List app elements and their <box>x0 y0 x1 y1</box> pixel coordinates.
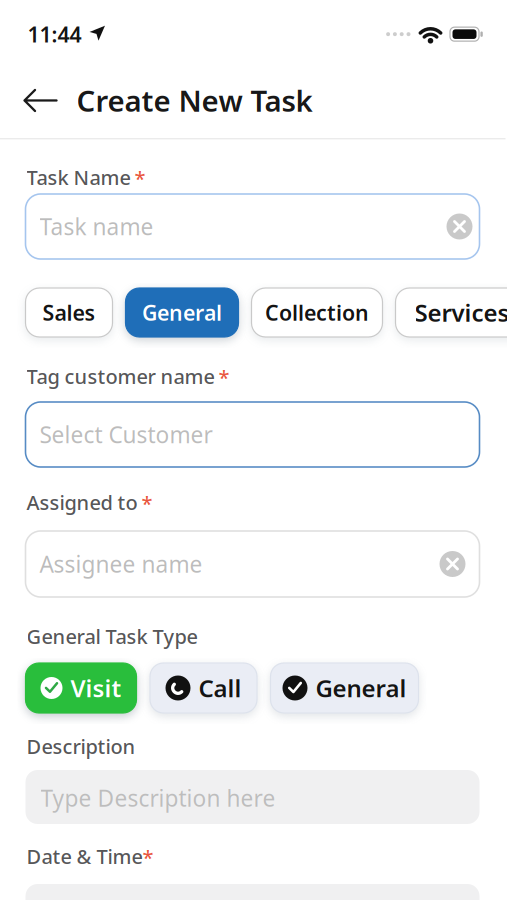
button[interactable]: Type Description here <box>25 770 479 824</box>
button[interactable]: Back <box>23 88 56 112</box>
staticText: Assignee name <box>39 549 202 579</box>
button[interactable]: Task name <box>25 194 479 259</box>
staticText: Assigned to <box>26 489 137 516</box>
button[interactable]: Collection <box>251 288 382 337</box>
button[interactable]: General <box>125 288 238 337</box>
staticText: * <box>141 490 152 517</box>
staticText: Date & Time <box>26 843 142 870</box>
staticText: Task name <box>39 211 153 241</box>
staticText: Collection <box>265 298 369 327</box>
staticText: General <box>142 298 222 327</box>
staticText: Call <box>198 672 241 704</box>
staticText: Task Name <box>26 164 130 191</box>
staticText: * <box>142 844 153 871</box>
button[interactable]: Call <box>150 663 257 713</box>
staticText: Create New Task <box>76 81 312 120</box>
button[interactable]: Visit <box>25 663 136 713</box>
button[interactable]: Clear text <box>446 213 472 239</box>
staticText: Visit <box>70 672 121 704</box>
staticText: General Task Type <box>26 623 197 650</box>
staticText: Description <box>26 733 135 760</box>
button[interactable]: Services <box>395 288 507 337</box>
button[interactable]: Sales <box>25 288 112 337</box>
button[interactable]: Assignee name <box>25 531 479 597</box>
staticText: 11:44 <box>27 20 81 48</box>
staticText: Select Customer <box>39 419 212 449</box>
staticText: General <box>315 672 406 704</box>
staticText: * <box>218 364 229 391</box>
staticText: Sales <box>42 298 95 327</box>
staticText: Tag customer name <box>26 363 214 390</box>
staticText: * <box>134 165 145 192</box>
staticText: Services <box>414 297 507 328</box>
staticText: Type Description here <box>40 783 275 813</box>
button[interactable]: General <box>270 663 418 713</box>
button[interactable]: Clear text <box>439 551 465 577</box>
button[interactable]: Select Customer <box>25 402 479 467</box>
